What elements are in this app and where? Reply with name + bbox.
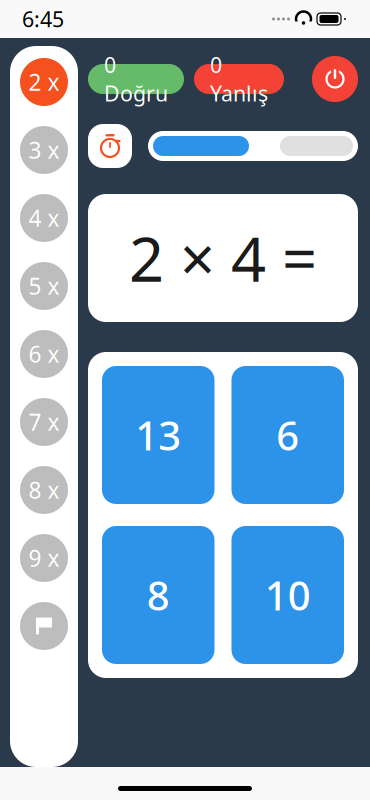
staticText: 7 x — [28, 407, 59, 437]
button[interactable]: 13 — [102, 366, 214, 504]
staticText: 4 x — [28, 203, 59, 233]
button[interactable]: Flagged questions — [20, 602, 68, 650]
staticText: 8 x — [28, 475, 59, 505]
button[interactable]: 5 x — [20, 262, 68, 310]
button[interactable]: 4 x — [20, 194, 68, 242]
button[interactable]: 8 x — [20, 466, 68, 514]
staticText: 13 — [135, 408, 181, 461]
staticText: 2 × 4 = — [129, 217, 317, 299]
button[interactable]: 9 x — [20, 534, 68, 582]
button[interactable]: 7 x — [20, 398, 68, 446]
staticText: 6:45 — [22, 5, 64, 33]
button[interactable]: 0 Doğru — [88, 64, 184, 94]
staticText: 5 x — [28, 271, 59, 301]
button[interactable]: 2 x — [20, 58, 68, 106]
button[interactable]: 6 — [231, 366, 344, 504]
staticText: 10 — [265, 568, 311, 621]
staticText: 8 — [147, 568, 170, 621]
staticText: 0 Doğru — [104, 51, 168, 107]
button[interactable]: Quit — [312, 56, 358, 102]
button[interactable]: 6 x — [20, 330, 68, 378]
staticText: 9 x — [28, 543, 59, 573]
staticText: 2 x — [28, 67, 59, 97]
staticText: 6 x — [28, 339, 59, 369]
button[interactable]: 0 Yanlış — [194, 64, 284, 94]
button[interactable]: 10 — [231, 526, 344, 664]
staticText: 3 x — [28, 135, 59, 165]
staticText: 6 — [276, 408, 299, 461]
staticText: 0 Yanlış — [210, 51, 268, 107]
button[interactable]: 8 — [102, 526, 214, 664]
button[interactable]: 3 x — [20, 126, 68, 174]
